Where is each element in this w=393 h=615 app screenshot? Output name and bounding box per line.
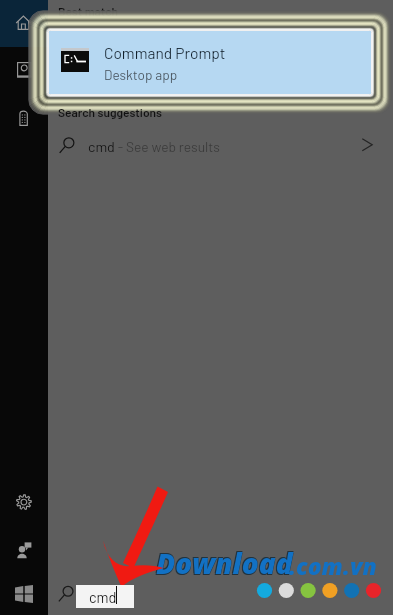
staticText: Download xyxy=(156,545,293,583)
button[interactable]: Command Prompt xyxy=(49,31,371,94)
button[interactable]: Start xyxy=(0,573,48,615)
staticText: Command Prompt xyxy=(104,43,226,62)
button[interactable]: Home xyxy=(8,9,40,41)
staticText: Search suggestions xyxy=(58,105,163,119)
button[interactable]: Photos xyxy=(11,104,43,136)
staticText: cmd xyxy=(89,588,117,605)
staticText: Best match xyxy=(58,4,119,18)
staticText: Desktop app xyxy=(104,66,178,82)
staticText: Download xyxy=(155,545,292,583)
button[interactable]: Settings xyxy=(8,488,40,520)
staticText: Download xyxy=(156,543,293,581)
staticText: cmd xyxy=(88,138,115,155)
staticText: Download xyxy=(156,544,293,582)
button[interactable]: Documents xyxy=(9,56,41,88)
staticText: - See web results xyxy=(115,138,220,155)
button[interactable]: Feedback xyxy=(9,536,41,568)
staticText: .com.vn xyxy=(289,550,377,581)
button[interactable]: cmd xyxy=(0,128,393,162)
staticText: Download xyxy=(155,543,292,581)
button[interactable]: cmd xyxy=(76,585,134,608)
